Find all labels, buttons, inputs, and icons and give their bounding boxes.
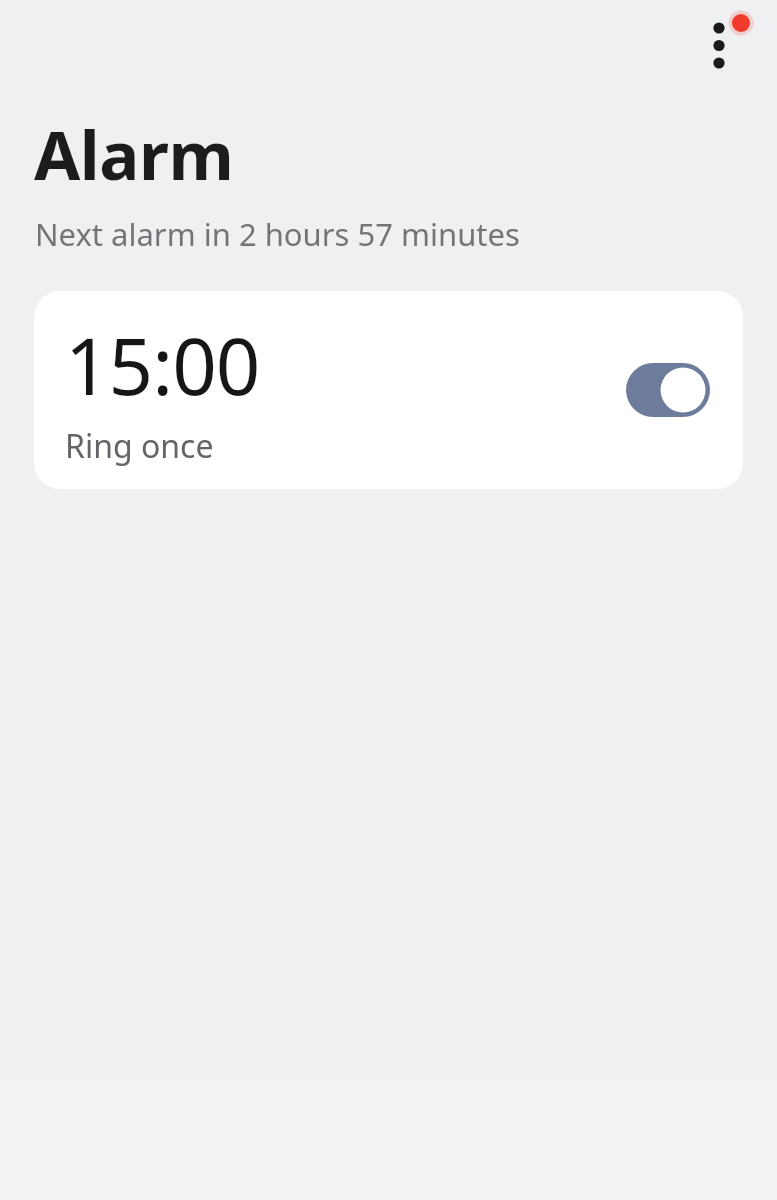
button[interactable]: 15:00 — [34, 291, 743, 489]
button[interactable]: Alarm enabled — [626, 363, 710, 417]
button[interactable]: More options — [696, 6, 750, 80]
staticText: Ring once — [65, 424, 214, 468]
staticText: Next alarm in 2 hours 57 minutes — [35, 213, 520, 255]
staticText: Alarm — [34, 108, 234, 199]
staticText: 15:00 — [65, 312, 260, 418]
